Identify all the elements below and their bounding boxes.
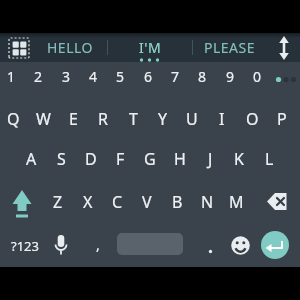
staticText: 7	[171, 67, 180, 86]
button[interactable]: N	[192, 181, 222, 222]
button[interactable]: I'M	[118, 33, 182, 62]
staticText: PLEASE	[204, 38, 256, 57]
button[interactable]: E	[58, 98, 88, 139]
button[interactable]: 1	[0, 63, 24, 90]
staticText: A	[26, 148, 37, 170]
button[interactable]: B	[162, 181, 192, 222]
staticText: HELLO	[47, 38, 93, 57]
button[interactable]: 3	[53, 63, 79, 90]
button[interactable]: C	[102, 181, 132, 222]
staticText: R	[98, 108, 108, 130]
staticText: Q	[7, 108, 20, 130]
button[interactable]: 6	[135, 63, 161, 90]
staticText: 5	[116, 67, 125, 86]
button[interactable]	[261, 231, 289, 259]
staticText: 1	[7, 67, 16, 86]
button[interactable]: K	[224, 138, 254, 179]
staticText: U	[186, 108, 198, 130]
staticText: 2	[34, 67, 43, 86]
staticText: G	[144, 148, 156, 170]
staticText: V	[142, 191, 152, 213]
staticText: E	[69, 108, 78, 130]
button[interactable]	[259, 186, 295, 218]
button[interactable]: ,	[88, 230, 108, 258]
button[interactable]: 8	[189, 63, 215, 90]
button[interactable]	[274, 35, 294, 61]
staticText: 3	[62, 67, 71, 86]
staticText: F	[116, 148, 125, 170]
button[interactable]: 9	[217, 63, 243, 90]
staticText: 0	[253, 67, 262, 86]
button[interactable]: T	[118, 98, 148, 139]
staticText: T	[129, 108, 138, 130]
staticText: B	[172, 191, 183, 213]
button[interactable]: U	[177, 98, 207, 139]
button[interactable]	[4, 183, 40, 221]
button[interactable]: G	[135, 138, 165, 179]
button[interactable]: Y	[148, 98, 178, 139]
button[interactable]: D	[76, 138, 106, 179]
button[interactable]: ?123	[5, 228, 45, 264]
button[interactable]: 2	[25, 63, 51, 90]
staticText: L	[265, 148, 274, 170]
staticText: H	[174, 148, 186, 170]
button[interactable]: A	[16, 138, 46, 179]
staticText: M	[229, 191, 244, 213]
button[interactable]	[7, 36, 31, 60]
staticText: 6	[144, 67, 153, 86]
button[interactable]: R	[88, 98, 118, 139]
button[interactable]: O	[237, 98, 267, 139]
staticText: C	[112, 191, 123, 213]
staticText: K	[234, 148, 244, 170]
button[interactable]: 0	[244, 63, 270, 90]
staticText: X	[83, 191, 93, 213]
staticText: 8	[198, 67, 207, 86]
button[interactable]: PLEASE	[194, 33, 266, 62]
button[interactable]: S	[46, 138, 76, 179]
staticText: O	[246, 108, 259, 130]
staticText: P	[277, 108, 287, 130]
staticText: Y	[158, 108, 168, 130]
staticText: D	[85, 148, 97, 170]
button[interactable]: W	[28, 98, 58, 139]
button[interactable]: Q	[0, 98, 28, 139]
staticText: I	[219, 108, 225, 130]
staticText: Z	[53, 191, 63, 213]
staticText: J	[208, 148, 213, 170]
button[interactable]: L	[254, 138, 284, 179]
staticText: I'M	[139, 38, 162, 57]
button[interactable]: V	[132, 181, 162, 222]
staticText: N	[201, 191, 214, 213]
button[interactable]: I	[207, 98, 237, 139]
staticText: ?123	[11, 237, 39, 255]
staticText: 4	[89, 67, 98, 86]
button[interactable]	[228, 233, 253, 258]
button[interactable]: P	[267, 98, 297, 139]
button[interactable]	[48, 229, 74, 261]
button[interactable]: 4	[80, 63, 106, 90]
button[interactable]: M	[221, 181, 251, 222]
button[interactable]: J	[195, 138, 225, 179]
button[interactable]: 5	[107, 63, 133, 90]
staticText: 9	[226, 67, 235, 86]
staticText: W	[36, 108, 51, 130]
button[interactable]: Z	[43, 181, 73, 222]
staticText: S	[57, 148, 66, 170]
button[interactable]: F	[105, 138, 135, 179]
button[interactable]	[117, 233, 183, 255]
button[interactable]: X	[73, 181, 103, 222]
staticText: ,	[96, 235, 100, 254]
button[interactable]: 7	[162, 63, 188, 90]
button[interactable]: H	[165, 138, 195, 179]
button[interactable]: HELLO	[34, 33, 106, 62]
